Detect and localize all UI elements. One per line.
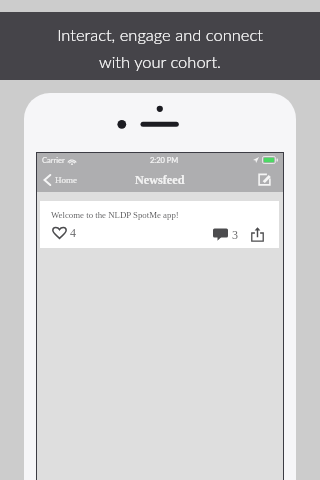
staticText: Welcome to the NLDP SpotMe app! [51,210,179,220]
staticText: Home [55,175,77,185]
button[interactable]: Welcome to the NLDP SpotMe app! [40,201,279,248]
button[interactable]: Share [251,227,264,242]
button[interactable]: Compose new post [257,172,272,187]
staticText: with your cohort. [99,52,221,72]
staticText: 2:20 PM [150,156,179,165]
staticText: Newsfeed [135,173,185,187]
button[interactable]: 4 [51,226,76,239]
button[interactable]: Home [42,174,77,186]
staticText: 4 [70,226,76,239]
staticText: Interact, engage and connect [57,25,263,45]
staticText: 3 [232,228,238,241]
button[interactable]: 3 [213,228,238,241]
staticText: Carrier [42,156,65,165]
